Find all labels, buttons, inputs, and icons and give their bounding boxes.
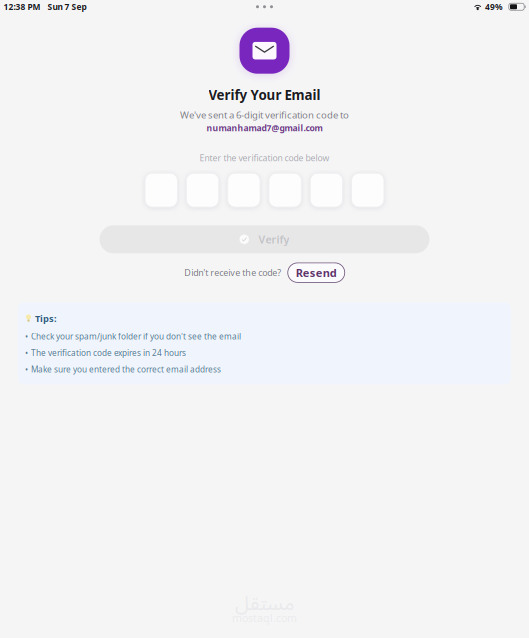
staticText: Didn't receive the code? [184,267,281,279]
staticText: Resend [296,265,337,280]
staticText: Check your spam/junk folder if you don't… [31,331,241,342]
staticText: Tips: [35,312,57,325]
button[interactable]: Verification code digit [269,173,301,207]
staticText: Make sure you entered the correct email … [31,364,221,375]
staticText: We've sent a 6-digit verification code t… [180,108,349,121]
staticText: Enter the verification code below [199,152,329,164]
button[interactable]: Verification code digit [228,173,260,207]
staticText: مستقل [234,583,294,625]
staticText: 49% [485,1,503,12]
button[interactable]: Verification code digit [145,173,177,207]
staticText: 12:38 PM [3,1,40,12]
staticText: Verify Your Email [208,86,320,104]
staticText: • [25,364,28,375]
button[interactable]: Verify [99,225,429,253]
button[interactable]: Verification code digit [186,173,219,207]
staticText: • [25,331,28,342]
button[interactable]: Verification code digit [351,173,384,207]
button[interactable]: Resend [288,263,345,282]
staticText: mostaql.com [232,610,297,625]
button[interactable]: Verification code digit [310,173,343,207]
staticText: The verification code expires in 24 hour… [31,347,186,359]
staticText: Sun 7 Sep [47,1,86,12]
staticText: numanhamad7@gmail.com [206,122,322,134]
staticText: Verify [258,232,289,246]
staticText: • [25,347,28,359]
